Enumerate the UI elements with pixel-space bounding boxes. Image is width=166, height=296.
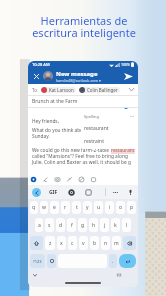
staticText: j xyxy=(104,222,106,229)
button[interactable]: . xyxy=(109,254,117,268)
staticText: restaurant xyxy=(84,125,109,132)
staticText: v xyxy=(82,240,85,247)
button[interactable]: Send xyxy=(123,71,134,82)
staticText: Kat Larsson xyxy=(49,87,74,93)
staticText: 10:28 AM xyxy=(32,62,50,67)
staticText: restraint xyxy=(84,138,104,145)
staticText: Brunch at the Farm xyxy=(32,98,78,105)
button[interactable]: a xyxy=(35,218,43,232)
staticText: q xyxy=(32,204,36,211)
button[interactable]: GIF xyxy=(49,189,58,196)
button[interactable]: Voice input xyxy=(127,189,134,196)
staticText: x xyxy=(60,240,63,247)
staticText: g xyxy=(81,222,85,229)
button[interactable]: Attach xyxy=(42,176,49,183)
staticText: e xyxy=(53,204,56,211)
button[interactable]: Save draft xyxy=(90,176,97,183)
staticText: r xyxy=(64,204,67,211)
button[interactable]: Format text xyxy=(30,176,37,183)
button[interactable]: Back xyxy=(32,188,41,197)
button[interactable]: Spelling xyxy=(81,109,138,149)
button[interactable]: Brunch at the Farm xyxy=(28,96,138,107)
staticText: called "Mansions"? Feel free to bring al… xyxy=(32,153,128,160)
staticText: Hey friends, xyxy=(32,118,59,125)
staticText: d xyxy=(59,222,63,229)
button[interactable]: i xyxy=(105,201,114,214)
button[interactable]: n xyxy=(101,236,110,250)
button[interactable]: Link xyxy=(78,176,85,183)
button[interactable]: v xyxy=(79,236,88,250)
staticText: Sunday. xyxy=(32,133,50,140)
button[interactable]: More xyxy=(112,189,119,196)
staticText: a xyxy=(38,222,41,229)
button[interactable]: j xyxy=(100,218,109,232)
button[interactable]: To xyxy=(28,84,138,95)
staticText: Julie, Colin and Baxter as well, it shou… xyxy=(32,159,131,166)
button[interactable]: Camera xyxy=(54,176,61,183)
button[interactable]: t xyxy=(72,201,81,214)
staticText: s xyxy=(48,222,51,229)
button[interactable]: l xyxy=(122,218,131,232)
button[interactable]: x xyxy=(57,236,66,250)
staticText: h xyxy=(92,222,96,229)
button[interactable]: p xyxy=(127,201,136,214)
button[interactable]: f xyxy=(67,218,76,232)
button[interactable]: e xyxy=(50,201,59,214)
staticText: l xyxy=(126,222,128,229)
button[interactable]: Close xyxy=(32,72,40,80)
staticText: GIF xyxy=(49,189,58,196)
button[interactable]: y xyxy=(83,201,92,214)
staticText: . xyxy=(112,258,114,265)
staticText: ?123 xyxy=(33,259,42,264)
button[interactable]: Stickers xyxy=(85,189,92,196)
button[interactable]: z xyxy=(45,236,55,250)
staticText: y xyxy=(86,204,89,211)
button[interactable]: ?123 xyxy=(30,254,45,268)
button[interactable]: Shift xyxy=(30,236,43,250)
staticText: To xyxy=(32,87,37,93)
staticText: k xyxy=(114,222,117,229)
staticText: z xyxy=(49,240,52,247)
staticText: w xyxy=(42,204,46,211)
staticText: n xyxy=(104,240,108,247)
staticText: Spelling xyxy=(84,114,99,119)
button[interactable]: Hide keyboard xyxy=(32,272,38,278)
staticText: What do you think about brunch on xyxy=(32,127,113,134)
button[interactable]: g xyxy=(78,218,87,232)
button[interactable]: q xyxy=(30,201,38,214)
button[interactable]: Emoji xyxy=(47,254,56,268)
button[interactable]: Enter xyxy=(119,254,136,268)
staticText: kamlin48@outlook.com ▾ xyxy=(56,78,101,83)
button[interactable]: Backspace xyxy=(123,236,136,250)
staticText: Herramientas de escritura inteligente xyxy=(1,13,166,40)
button[interactable]: Settings xyxy=(68,189,75,196)
staticText: We could go this new farm-2-table xyxy=(32,147,111,154)
button[interactable]: w xyxy=(40,201,48,214)
staticText: f xyxy=(71,222,73,229)
staticText: b xyxy=(93,240,97,247)
staticText: i xyxy=(109,204,111,211)
staticText: t xyxy=(76,204,78,211)
staticText: m xyxy=(114,240,119,247)
staticText: restaurant xyxy=(111,147,135,154)
button[interactable]: u xyxy=(94,201,103,214)
staticText: Colin Ballinger xyxy=(87,87,118,93)
button[interactable]: Signature xyxy=(66,176,73,183)
button[interactable]: o xyxy=(116,201,125,214)
button[interactable]: Resize keyboard xyxy=(116,272,122,278)
staticText: o xyxy=(119,204,123,211)
button[interactable]: m xyxy=(112,236,121,250)
staticText: c xyxy=(71,240,74,247)
button[interactable]: s xyxy=(45,218,54,232)
staticText: ··· xyxy=(130,113,135,120)
button[interactable]: h xyxy=(89,218,98,232)
staticText: u xyxy=(97,204,101,211)
button[interactable]: r xyxy=(61,201,70,214)
button[interactable]: k xyxy=(111,218,120,232)
button[interactable]: d xyxy=(56,218,65,232)
staticText: 100% xyxy=(121,62,130,67)
button[interactable]: c xyxy=(68,236,77,250)
button[interactable]: b xyxy=(90,236,99,250)
staticText: New message xyxy=(56,70,98,78)
